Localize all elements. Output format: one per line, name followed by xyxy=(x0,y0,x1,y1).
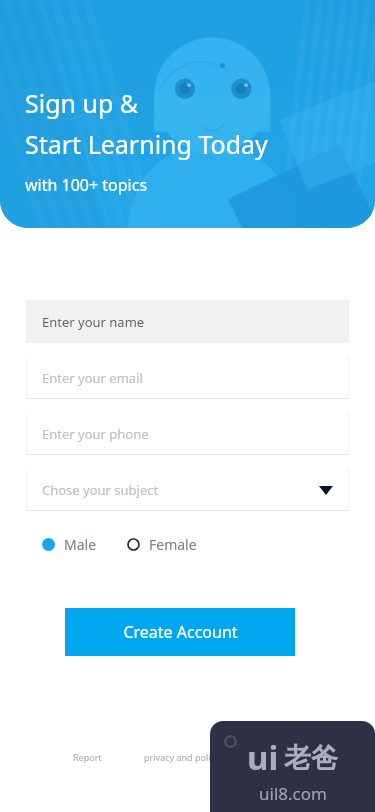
button[interactable]: Female xyxy=(127,535,197,554)
staticText: Enter your phone xyxy=(42,425,149,443)
button[interactable]: Create Account xyxy=(65,608,295,656)
other: Open subject dropdown xyxy=(315,479,337,501)
staticText: privacy and policy xyxy=(144,751,220,763)
staticText: Start Learning Today xyxy=(25,127,268,161)
staticText: Sign up & xyxy=(25,86,139,120)
staticText: Male xyxy=(64,535,97,554)
staticText: with 100+ topics xyxy=(25,174,148,196)
button[interactable]: Enter your name xyxy=(26,300,349,343)
button[interactable]: Chose your subject xyxy=(26,468,349,511)
button[interactable]: privacy and policy xyxy=(141,748,223,766)
staticText: Female xyxy=(149,535,197,554)
staticText: Enter your name xyxy=(42,313,145,331)
button[interactable]: Enter your email xyxy=(26,356,349,399)
staticText: Enter your email xyxy=(42,369,143,387)
button[interactable]: Enter your phone xyxy=(26,412,349,455)
staticText: Create Account xyxy=(123,621,238,643)
button[interactable]: Report xyxy=(70,748,105,766)
staticText: Chose your subject xyxy=(42,481,159,499)
staticText: uil8.com xyxy=(259,782,327,805)
staticText: Report xyxy=(73,751,102,763)
staticText: 老爸 xyxy=(284,741,338,775)
staticText: ui xyxy=(247,735,279,780)
button[interactable]: Male xyxy=(42,535,97,554)
